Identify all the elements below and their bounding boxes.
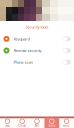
- button[interactable]: Clean: [15, 117, 30, 128]
- staticText: Clean: [18, 124, 26, 127]
- button[interactable]: More: [59, 117, 74, 128]
- staticText: Tools: [48, 124, 55, 127]
- button[interactable]: Scan: [0, 117, 15, 128]
- button[interactable]: Phone scan: [0, 56, 74, 68]
- staticText: Wifi: [34, 124, 39, 127]
- staticText: Remote security: [13, 48, 41, 53]
- staticText: Scan: [5, 124, 10, 127]
- button[interactable]: Keyguard: [0, 33, 74, 45]
- button[interactable]: Remote security: [0, 45, 74, 56]
- staticText: Phone scan: [13, 60, 32, 65]
- button[interactable]: Wifi: [30, 117, 44, 128]
- staticText: Security tools: [25, 24, 48, 30]
- button[interactable]: Tools: [44, 117, 59, 128]
- staticText: More: [63, 124, 70, 127]
- staticText: Keyguard: [13, 36, 29, 41]
